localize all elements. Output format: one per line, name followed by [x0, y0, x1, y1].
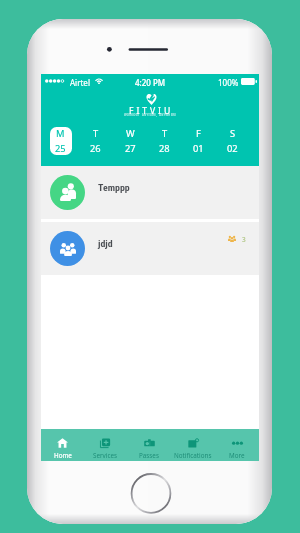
staticText: 26 [90, 142, 101, 155]
staticText: Home [54, 451, 72, 460]
button[interactable]: W [113, 126, 147, 156]
staticText: S [230, 127, 236, 140]
staticText: 28 [159, 142, 170, 155]
staticText: jdjd [98, 238, 113, 250]
button[interactable]: T [147, 126, 181, 156]
button[interactable]: Passes [127, 429, 171, 461]
button[interactable]: jdjd [41, 222, 259, 275]
staticText: 3 [242, 235, 246, 244]
staticText: FITVIU [129, 105, 174, 117]
staticText: WORKOUT ANYTIME, ANYWHERE [124, 113, 177, 117]
button[interactable]: Services [84, 429, 127, 461]
staticText: More [229, 451, 245, 460]
button[interactable]: S [215, 126, 249, 156]
button[interactable]: More [215, 429, 259, 461]
staticText: 02 [227, 142, 238, 155]
staticText: Airtel [70, 77, 90, 88]
staticText: Passes [139, 451, 159, 460]
staticText: M [56, 127, 65, 140]
staticText: T [93, 127, 99, 140]
staticText: F [196, 127, 201, 140]
button[interactable]: T [78, 126, 113, 156]
button[interactable]: Notifications [171, 429, 215, 461]
button[interactable]: Home [41, 429, 84, 461]
button[interactable]: M [43, 126, 78, 156]
staticText: 27 [125, 142, 136, 155]
staticText: 01 [193, 142, 204, 155]
staticText: Services [93, 451, 118, 460]
staticText: Temppp [98, 182, 130, 194]
staticText: 4:20 PM [135, 77, 166, 88]
staticText: W [126, 127, 135, 140]
staticText: 100% [218, 77, 239, 88]
button[interactable]: F [181, 126, 215, 156]
staticText: 25 [55, 142, 66, 155]
button[interactable]: Temppp [41, 166, 259, 219]
staticText: Notifications [174, 451, 212, 460]
staticText: T [162, 127, 168, 140]
